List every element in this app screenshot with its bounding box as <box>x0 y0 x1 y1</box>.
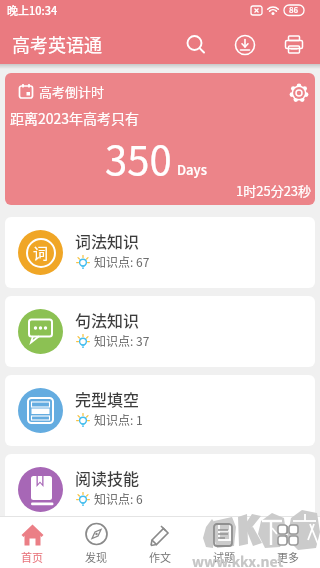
staticText: 知识点: 37 <box>94 332 150 349</box>
staticText: 完型填空 <box>75 387 140 410</box>
staticText: 知识点: 6 <box>94 490 143 507</box>
button[interactable]: 作文 <box>128 516 192 568</box>
button[interactable]: 句法知识 <box>5 296 315 367</box>
staticText: 86 <box>289 4 299 16</box>
staticText: 阅读技能 <box>75 466 140 489</box>
button[interactable]: 首页 <box>0 516 64 568</box>
staticText: 1时25分23秒 <box>236 181 312 200</box>
button[interactable] <box>229 29 261 61</box>
staticText: 作文 <box>149 549 171 565</box>
button[interactable]: 完型填空 <box>5 375 315 446</box>
button[interactable]: 试题 <box>192 516 256 568</box>
staticText: 350 <box>105 129 172 187</box>
staticText: www.kkx.net <box>192 551 284 568</box>
button[interactable]: 词 <box>5 217 315 288</box>
staticText: 距离2023年高考只有 <box>10 108 140 128</box>
staticText: Days <box>177 160 207 179</box>
button[interactable]: 更多 <box>256 516 320 568</box>
staticText: 首页 <box>21 549 43 565</box>
staticText: 晚上10:34 <box>7 2 58 18</box>
staticText: 知识点: 1 <box>94 411 143 428</box>
staticText: 高考英语通 <box>12 31 102 57</box>
button[interactable] <box>278 29 310 61</box>
staticText: 知识点: 67 <box>94 253 150 270</box>
staticText: 更多 <box>277 549 299 565</box>
button[interactable]: 发现 <box>64 516 128 568</box>
button[interactable] <box>180 29 212 61</box>
staticText: 词法知识 <box>75 229 140 252</box>
staticText: 试题 <box>213 549 235 565</box>
button[interactable]: 阅读技能 <box>5 454 315 525</box>
staticText: 词 <box>33 242 49 264</box>
button[interactable] <box>288 82 312 106</box>
staticText: 高考倒计时 <box>39 82 105 101</box>
staticText: 句法知识 <box>75 308 140 331</box>
staticText: 发现 <box>85 549 107 565</box>
